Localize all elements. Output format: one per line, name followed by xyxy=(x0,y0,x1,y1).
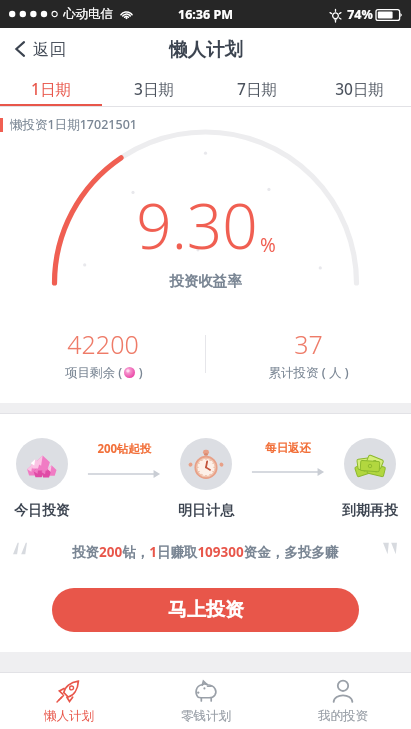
button[interactable]: 7日期 xyxy=(205,70,308,106)
staticText: 到期再投 xyxy=(342,502,398,520)
button[interactable]: 零钱计划 xyxy=(137,673,274,729)
staticText: ) xyxy=(135,364,143,381)
staticText: 200钻起投 xyxy=(97,441,152,457)
staticText: 懒人计划 xyxy=(169,38,243,61)
staticText: 返回 xyxy=(33,39,66,60)
staticText: 42200 xyxy=(67,327,139,361)
staticText: 累计投资 ( 人 ) xyxy=(268,364,349,381)
staticText: 懒人计划 xyxy=(44,708,94,724)
staticText: 零钱计划 xyxy=(181,708,231,724)
staticText: 项目剩余 ( xyxy=(63,364,124,381)
staticText: 37 xyxy=(294,327,323,361)
staticText: 16:36 PM xyxy=(178,6,233,23)
staticText: 今日投资 xyxy=(14,502,70,520)
staticText: 心动电信 xyxy=(63,6,113,22)
button[interactable]: 1日期 xyxy=(0,70,102,106)
button[interactable]: 30日期 xyxy=(308,70,411,106)
staticText: 9.30 xyxy=(136,183,258,267)
staticText: 马上投资 xyxy=(168,598,244,622)
button[interactable]: 懒人计划 xyxy=(0,673,137,729)
staticText: 1日期 xyxy=(31,78,71,99)
staticText: 投资收益率 xyxy=(169,272,242,290)
button[interactable]: 我的投资 xyxy=(274,673,411,729)
staticText: 3日期 xyxy=(134,78,174,99)
button[interactable]: 返回 xyxy=(0,28,80,70)
staticText: 74% xyxy=(347,6,373,23)
button[interactable]: 3日期 xyxy=(102,70,205,106)
staticText: 明日计息 xyxy=(178,502,234,520)
staticText: 30日期 xyxy=(335,78,384,99)
staticText: 7日期 xyxy=(237,78,277,99)
staticText: 投资200钻，1日赚取109300资金，多投多赚 xyxy=(72,543,339,561)
staticText: % xyxy=(260,232,276,258)
staticText: 我的投资 xyxy=(318,708,368,724)
staticText: 每日返还 xyxy=(265,441,311,455)
button[interactable]: 马上投资 xyxy=(52,588,359,632)
staticText: 懒投资1日期17021501 xyxy=(10,116,137,133)
